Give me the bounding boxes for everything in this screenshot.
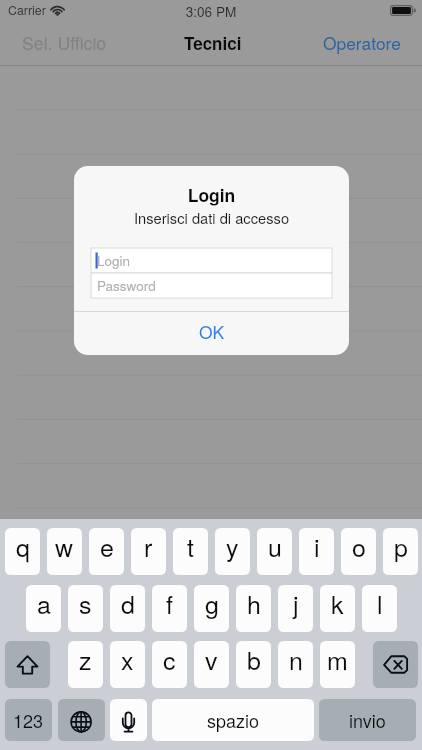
staticText: x bbox=[121, 641, 134, 677]
staticText: w bbox=[55, 528, 74, 564]
staticText: Tecnici bbox=[184, 31, 242, 55]
button[interactable]: f bbox=[152, 585, 187, 632]
button[interactable]: j bbox=[278, 585, 313, 632]
button[interactable]: w bbox=[47, 528, 82, 575]
button[interactable]: l bbox=[362, 585, 397, 632]
button[interactable]: OK bbox=[74, 311, 349, 355]
staticText: Carrier bbox=[8, 1, 46, 19]
staticText: 3:06 PM bbox=[0, 1, 422, 20]
button[interactable]: g bbox=[194, 585, 229, 632]
staticText: invio bbox=[349, 707, 386, 733]
button[interactable]: u bbox=[257, 528, 292, 575]
button[interactable]: c bbox=[152, 641, 187, 688]
button[interactable]: d bbox=[110, 585, 145, 632]
staticText: i bbox=[314, 528, 320, 564]
staticText: n bbox=[289, 641, 303, 677]
button[interactable]: Next keyboard bbox=[58, 699, 105, 741]
button[interactable]: spazio bbox=[152, 699, 314, 741]
staticText: s bbox=[79, 585, 92, 621]
button[interactable]: Operatore bbox=[323, 23, 401, 66]
button[interactable]: e bbox=[89, 528, 124, 575]
staticText: 123 bbox=[13, 707, 44, 733]
staticText: k bbox=[331, 585, 344, 621]
staticText: u bbox=[268, 528, 282, 564]
staticText: t bbox=[187, 528, 194, 564]
button[interactable]: m bbox=[320, 641, 355, 688]
button[interactable]: i bbox=[299, 528, 334, 575]
button[interactable]: s bbox=[68, 585, 103, 632]
button[interactable]: x bbox=[110, 641, 145, 688]
staticText: m bbox=[327, 641, 348, 677]
staticText: c bbox=[163, 641, 176, 677]
staticText: p bbox=[394, 528, 408, 564]
staticText: o bbox=[352, 528, 366, 564]
button[interactable]: Login bbox=[91, 248, 332, 273]
button[interactable]: z bbox=[68, 641, 103, 688]
button[interactable]: Shift bbox=[5, 641, 50, 688]
staticText: l bbox=[377, 585, 383, 621]
staticText: Password bbox=[97, 276, 156, 295]
button[interactable]: b bbox=[236, 641, 271, 688]
staticText: Login bbox=[97, 251, 131, 270]
staticText: v bbox=[205, 641, 218, 677]
staticText: e bbox=[100, 528, 114, 564]
button[interactable]: invio bbox=[319, 699, 416, 741]
staticText: y bbox=[226, 528, 239, 564]
button[interactable]: a bbox=[26, 585, 61, 632]
staticText: Inserisci dati di accesso bbox=[74, 207, 349, 228]
button[interactable]: v bbox=[194, 641, 229, 688]
button[interactable]: r bbox=[131, 528, 166, 575]
button[interactable]: p bbox=[383, 528, 418, 575]
button[interactable]: q bbox=[5, 528, 40, 575]
button[interactable]: n bbox=[278, 641, 313, 688]
staticText: q bbox=[16, 528, 30, 564]
button[interactable]: Sel. Ufficio bbox=[22, 23, 107, 66]
staticText: Login bbox=[74, 182, 349, 207]
button[interactable]: k bbox=[320, 585, 355, 632]
button[interactable]: 123 bbox=[5, 699, 52, 741]
staticText: h bbox=[247, 585, 261, 621]
staticText: g bbox=[205, 585, 219, 621]
staticText: spazio bbox=[207, 707, 260, 733]
staticText: j bbox=[293, 585, 299, 621]
staticText: b bbox=[247, 641, 261, 677]
button[interactable]: o bbox=[341, 528, 376, 575]
staticText: Operatore bbox=[323, 30, 401, 55]
button[interactable]: Password bbox=[91, 273, 332, 298]
button[interactable]: t bbox=[173, 528, 208, 575]
staticText: z bbox=[79, 641, 92, 677]
button[interactable]: y bbox=[215, 528, 250, 575]
staticText: f bbox=[166, 585, 173, 621]
staticText: OK bbox=[199, 319, 225, 344]
staticText: d bbox=[121, 585, 135, 621]
button[interactable]: h bbox=[236, 585, 271, 632]
staticText: Sel. Ufficio bbox=[22, 30, 107, 55]
button[interactable]: Backspace bbox=[373, 641, 418, 688]
button[interactable]: Dictation bbox=[110, 699, 147, 741]
staticText: a bbox=[37, 585, 51, 621]
staticText: r bbox=[144, 528, 153, 564]
